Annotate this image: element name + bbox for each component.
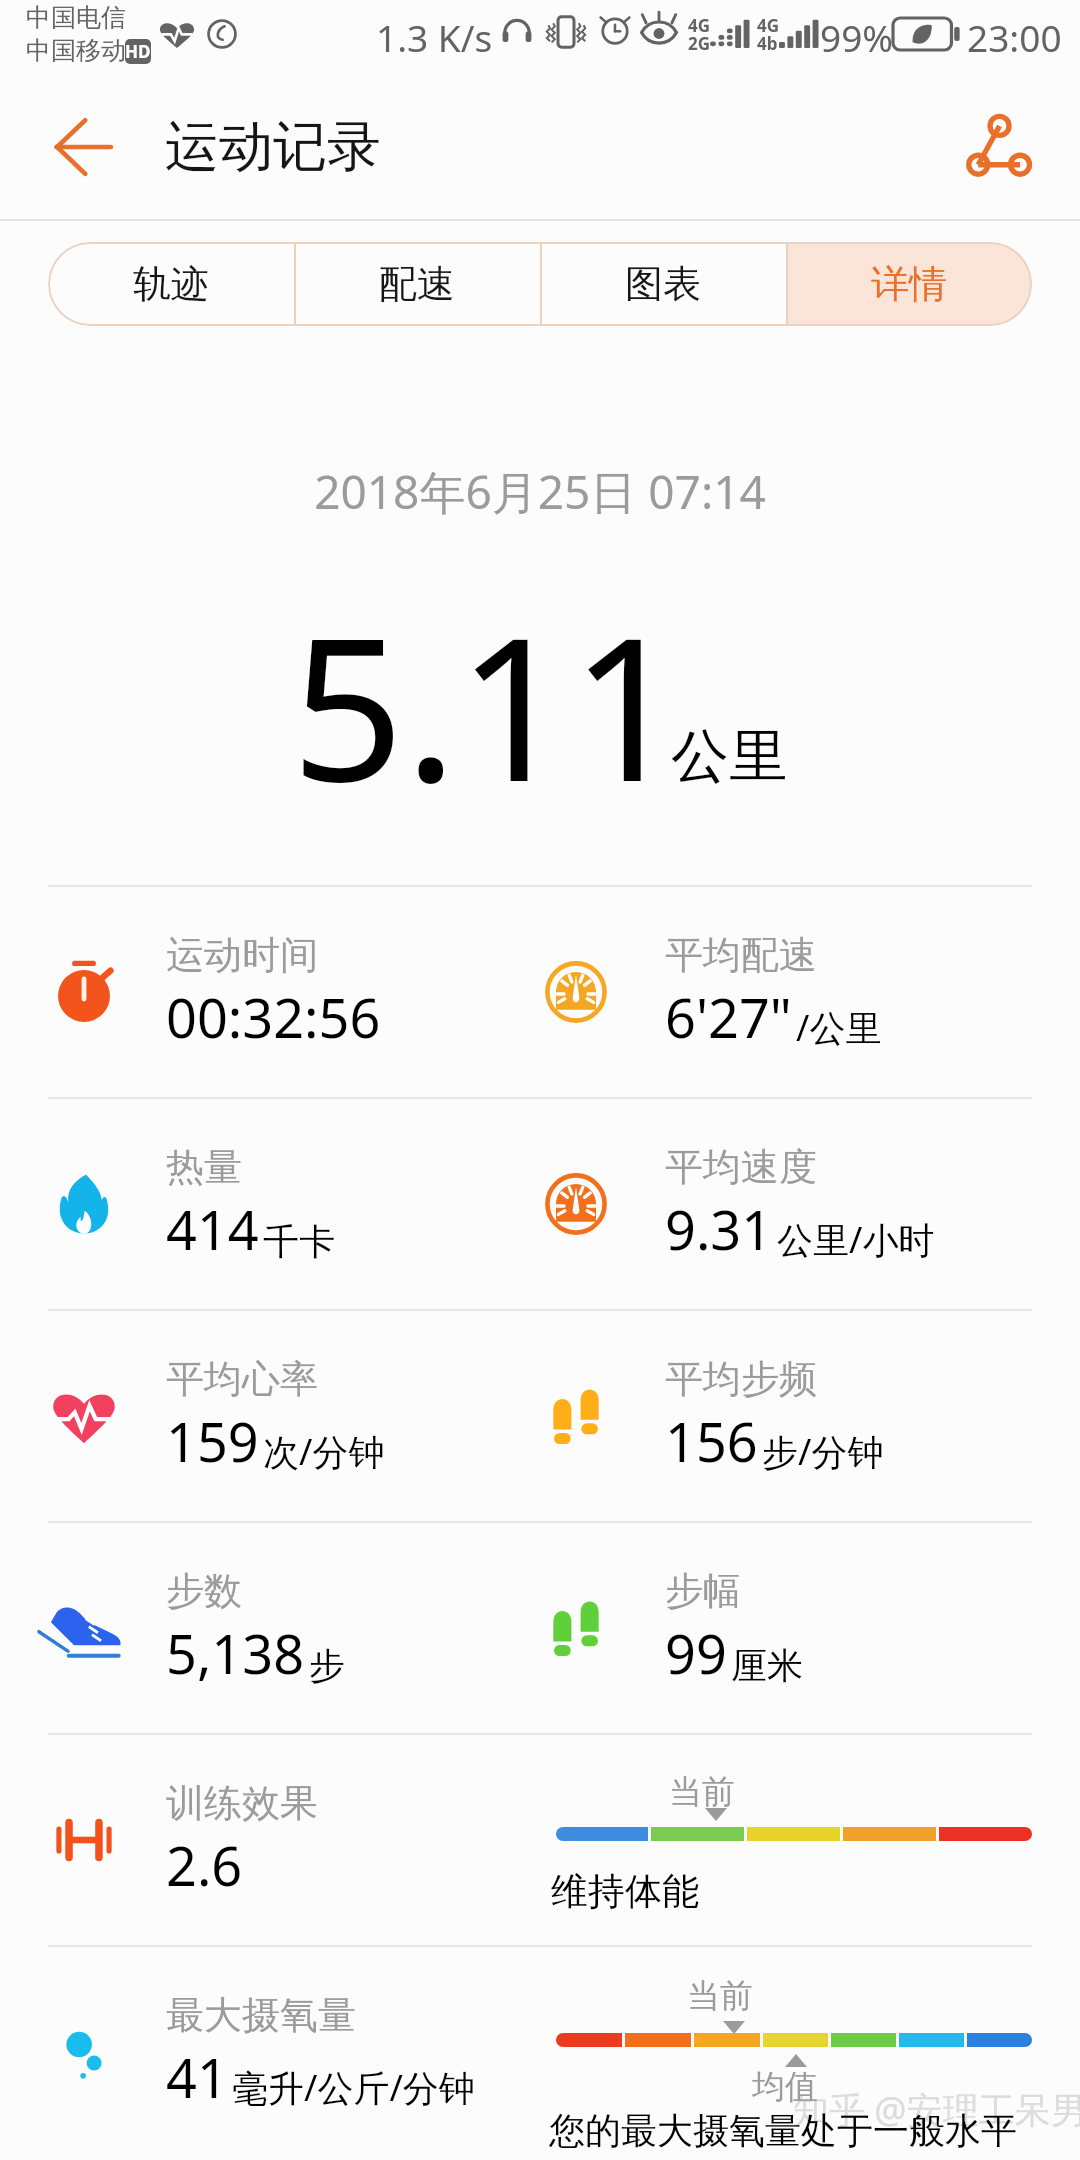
staticText: 训练效果 bbox=[166, 1779, 318, 1827]
button[interactable]: 配速 bbox=[294, 242, 540, 326]
staticText: 运动时间 bbox=[166, 931, 318, 979]
staticText: 00:32:56 bbox=[166, 980, 381, 1054]
staticText: 2018年6月25日 07:14 bbox=[0, 460, 1080, 523]
staticText: /公里 bbox=[796, 1003, 882, 1052]
staticText: 公里/小时 bbox=[777, 1215, 935, 1264]
staticText: 步幅 bbox=[665, 1567, 741, 1615]
staticText: 配速 bbox=[379, 260, 455, 308]
staticText: 维持体能 bbox=[551, 1868, 699, 1915]
staticText: 最大摄氧量 bbox=[166, 1991, 356, 2039]
staticText: 2.6 bbox=[166, 1828, 243, 1902]
button[interactable]: 热量 bbox=[40, 1099, 580, 1309]
staticText: 平均速度 bbox=[665, 1143, 817, 1191]
staticText: 详情 bbox=[871, 260, 947, 308]
staticText: 当前 bbox=[669, 1771, 735, 1813]
staticText: 次/分钟 bbox=[263, 1427, 385, 1476]
button[interactable]: 步幅 bbox=[532, 1523, 1072, 1733]
staticText: 414 bbox=[166, 1192, 259, 1266]
staticText: 99% bbox=[820, 12, 894, 62]
staticText: 4G bbox=[757, 14, 780, 37]
staticText: 公里 bbox=[671, 720, 787, 793]
staticText: 中国移动 bbox=[26, 35, 126, 66]
staticText: HD bbox=[125, 40, 151, 63]
button[interactable]: 训练效果 bbox=[40, 1735, 580, 1945]
staticText: 4G bbox=[688, 14, 711, 37]
button[interactable]: 平均配速 bbox=[532, 887, 1072, 1097]
staticText: 运动记录 bbox=[165, 113, 381, 181]
button[interactable]: 运动时间 bbox=[40, 887, 580, 1097]
staticText: 当前 bbox=[687, 1975, 753, 2017]
staticText: 均值 bbox=[752, 2066, 818, 2108]
button[interactable]: 最大摄氧量 bbox=[40, 1947, 580, 2157]
staticText: 中国电信 bbox=[26, 2, 126, 33]
staticText: 5.11 bbox=[291, 569, 684, 839]
button[interactable]: Share bbox=[960, 110, 1036, 186]
staticText: 1.3 K/s bbox=[376, 12, 493, 62]
staticText: 步/分钟 bbox=[762, 1427, 884, 1476]
staticText: 您的最大摄氧量处于一般水平 bbox=[549, 2108, 1017, 2153]
staticText: 图表 bbox=[625, 260, 701, 308]
staticText: 平均配速 bbox=[665, 931, 817, 979]
button[interactable]: 平均速度 bbox=[532, 1099, 1072, 1309]
staticText: 23:00 bbox=[967, 12, 1062, 62]
staticText: 轨迹 bbox=[133, 260, 209, 308]
staticText: 步 bbox=[309, 1643, 345, 1688]
staticText: 知乎 @安理工呆男 bbox=[793, 2085, 1080, 2134]
staticText: 4b bbox=[757, 32, 778, 55]
staticText: 2G bbox=[688, 32, 711, 55]
staticText: 平均步频 bbox=[665, 1355, 817, 1403]
button[interactable]: Back bbox=[52, 114, 116, 178]
button[interactable]: 平均心率 bbox=[40, 1311, 580, 1521]
staticText: 毫升/公斤/分钟 bbox=[232, 2063, 475, 2112]
staticText: 厘米 bbox=[731, 1643, 803, 1688]
button[interactable]: 步数 bbox=[40, 1523, 580, 1733]
staticText: 6'27" bbox=[665, 980, 792, 1054]
staticText: 99 bbox=[665, 1616, 727, 1690]
button[interactable]: 平均步频 bbox=[532, 1311, 1072, 1521]
button[interactable]: 图表 bbox=[540, 242, 786, 326]
staticText: 159 bbox=[166, 1404, 259, 1478]
staticText: 平均心率 bbox=[166, 1355, 318, 1403]
button[interactable]: 详情 bbox=[786, 242, 1032, 326]
staticText: 步数 bbox=[166, 1567, 242, 1615]
button[interactable]: 轨迹 bbox=[48, 242, 294, 326]
staticText: 41 bbox=[166, 2040, 228, 2114]
staticText: 热量 bbox=[166, 1143, 242, 1191]
staticText: 5,138 bbox=[166, 1616, 305, 1690]
staticText: 9.31 bbox=[665, 1192, 773, 1266]
staticText: 千卡 bbox=[263, 1219, 335, 1264]
staticText: 156 bbox=[665, 1404, 758, 1478]
